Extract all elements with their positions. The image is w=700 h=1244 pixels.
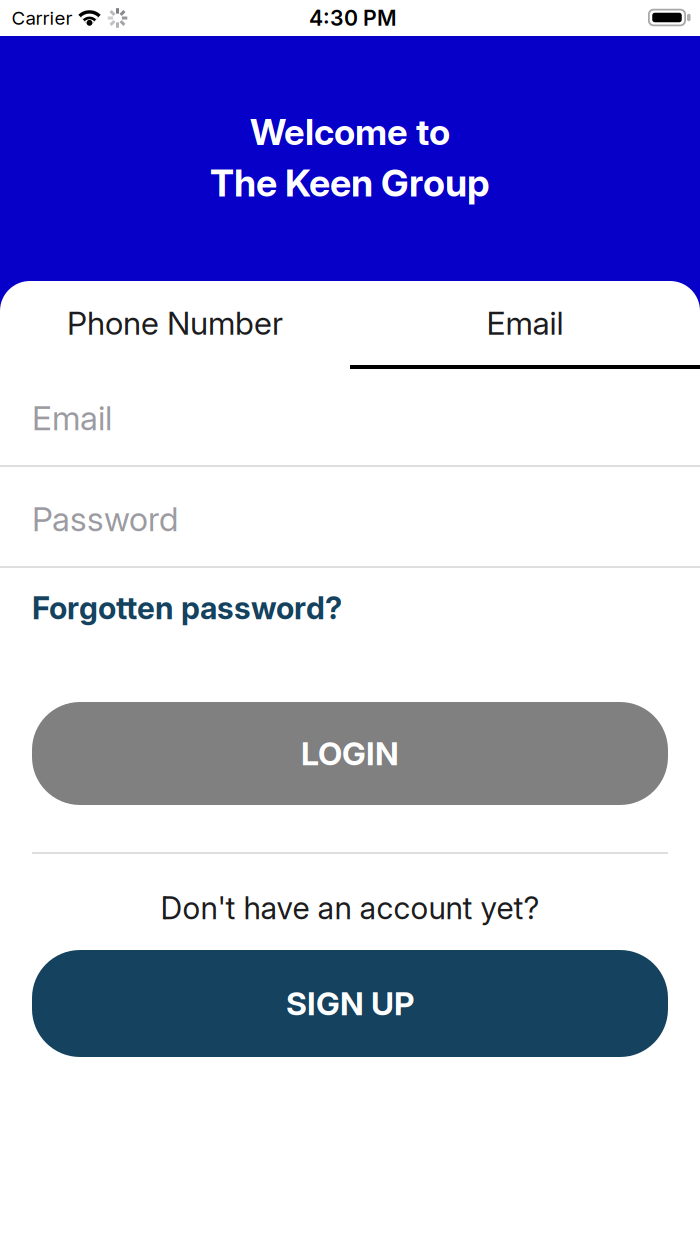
- staticText: Don't have an account yet?: [160, 890, 539, 926]
- staticText: Password: [32, 499, 178, 539]
- button[interactable]: LOGIN: [32, 702, 668, 805]
- staticText: Carrier: [11, 7, 72, 29]
- staticText: Welcome to: [250, 111, 450, 153]
- button[interactable]: Forgotten password?: [32, 578, 668, 638]
- staticText: The Keen Group: [210, 161, 490, 205]
- button[interactable]: SIGN UP: [32, 950, 668, 1057]
- staticText: Email: [32, 398, 112, 438]
- button[interactable]: Email: [350, 280, 700, 366]
- staticText: LOGIN: [301, 735, 399, 772]
- button[interactable]: Phone Number: [0, 280, 350, 366]
- staticText: Forgotten password?: [32, 590, 342, 626]
- staticText: Email: [486, 304, 563, 342]
- staticText: 4:30 PM: [309, 5, 397, 31]
- staticText: SIGN UP: [286, 985, 414, 1022]
- staticText: Phone Number: [67, 304, 283, 342]
- button[interactable]: Password: [32, 479, 668, 559]
- button[interactable]: Email: [32, 378, 668, 458]
